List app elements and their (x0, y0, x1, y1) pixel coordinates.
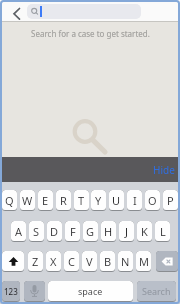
staticText: O (148, 193, 157, 208)
button[interactable]: M (136, 251, 151, 272)
button[interactable]: H (101, 221, 116, 242)
staticText: Q (5, 193, 14, 208)
staticText: 123 (4, 286, 18, 297)
button[interactable]: K (137, 221, 152, 242)
staticText: G (86, 224, 95, 239)
staticText: D (50, 224, 59, 239)
staticText: F (70, 224, 76, 239)
button[interactable]: D (47, 221, 62, 242)
button[interactable]: 123 (2, 281, 20, 302)
button[interactable]: O (145, 190, 160, 211)
button[interactable]: V (82, 251, 97, 272)
button[interactable] (0, 0, 21, 21)
button[interactable]: T (74, 190, 89, 211)
staticText: P (167, 193, 174, 208)
button[interactable]: U (109, 190, 124, 211)
staticText: J (125, 224, 129, 239)
staticText: A (15, 224, 23, 239)
button[interactable]: N (118, 251, 133, 272)
button[interactable]: X (46, 251, 61, 272)
button[interactable]: J (119, 221, 134, 242)
staticText: space (78, 285, 103, 297)
staticText: C (68, 254, 75, 269)
button[interactable]: F (65, 221, 80, 242)
button[interactable]: B (100, 251, 115, 272)
button[interactable]: C (64, 251, 79, 272)
button[interactable] (24, 281, 45, 302)
button[interactable]: L (155, 221, 170, 242)
staticText: B (104, 254, 112, 269)
button[interactable]: Q (2, 190, 17, 211)
button[interactable]: A (11, 221, 26, 242)
staticText: Search for a case to get started. (31, 28, 150, 39)
staticText: W (22, 193, 33, 208)
staticText: E (42, 193, 49, 208)
button[interactable]: P (163, 190, 178, 211)
staticText: Hide (153, 163, 175, 177)
staticText: K (141, 224, 148, 239)
staticText: V (86, 254, 93, 269)
staticText: U (112, 193, 121, 208)
button[interactable]: G (83, 221, 98, 242)
staticText: N (121, 254, 130, 269)
button[interactable]: space (48, 281, 133, 302)
button[interactable] (27, 4, 141, 19)
button[interactable]: I (127, 190, 142, 211)
button[interactable]: W (20, 190, 35, 211)
button[interactable]: Z (28, 251, 43, 272)
button[interactable]: R (56, 190, 71, 211)
staticText: L (160, 224, 166, 239)
button[interactable] (156, 251, 178, 272)
staticText: I (133, 193, 137, 208)
staticText: Y (95, 193, 102, 208)
staticText: Z (32, 254, 39, 269)
staticText: H (104, 224, 113, 239)
staticText: M (139, 254, 149, 269)
staticText: X (50, 254, 57, 269)
button[interactable]: E (38, 190, 53, 211)
button[interactable]: Search (137, 281, 176, 302)
button[interactable] (2, 251, 24, 272)
button[interactable]: Y (91, 190, 106, 211)
button[interactable]: Hide (153, 163, 180, 177)
staticText: S (33, 224, 40, 239)
staticText: Search (142, 285, 171, 297)
staticText: R (60, 193, 67, 208)
staticText: T (78, 193, 85, 208)
button[interactable]: S (29, 221, 44, 242)
